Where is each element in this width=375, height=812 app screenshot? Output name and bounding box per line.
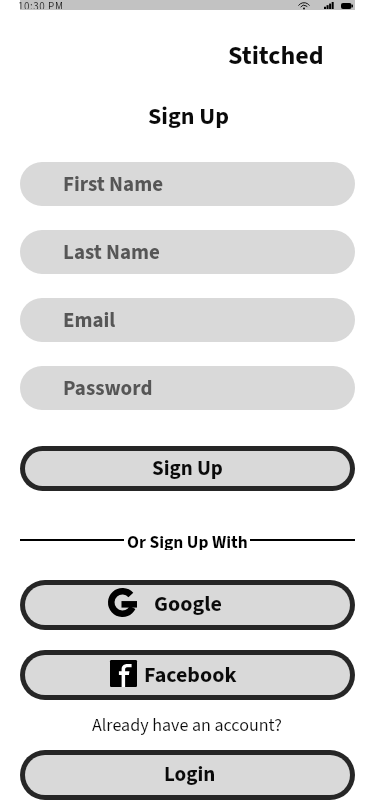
staticText: Google xyxy=(154,588,222,619)
staticText: Sign Up xyxy=(152,453,223,483)
staticText: Email xyxy=(63,305,116,335)
button[interactable]: Facebook xyxy=(25,655,350,695)
button[interactable]: Login xyxy=(25,755,350,795)
other: Wi-Fi xyxy=(300,2,308,9)
staticText: Login xyxy=(164,759,216,789)
staticText: Password xyxy=(63,373,153,403)
staticText: First Name xyxy=(63,169,164,199)
staticText: Facebook xyxy=(144,659,237,690)
button[interactable]: Password xyxy=(20,366,355,410)
staticText: Last Name xyxy=(63,237,160,267)
staticText: Already have an account? xyxy=(92,713,282,739)
other: Battery xyxy=(341,3,353,9)
button[interactable]: Sign Up xyxy=(25,451,350,486)
staticText: Stitched xyxy=(228,37,324,74)
staticText: 10:30 PM xyxy=(18,0,64,9)
staticText: Sign Up xyxy=(148,99,230,133)
button[interactable]: Email xyxy=(20,298,355,342)
button[interactable]: First Name xyxy=(20,162,355,206)
staticText: Or Sign Up With xyxy=(127,530,248,550)
button[interactable]: Google xyxy=(25,585,350,625)
other: Sign up with Google xyxy=(108,588,137,617)
button[interactable]: Last Name xyxy=(20,230,355,274)
other: Cellular signal xyxy=(324,2,334,9)
other: Sign up with Facebook xyxy=(110,660,137,687)
